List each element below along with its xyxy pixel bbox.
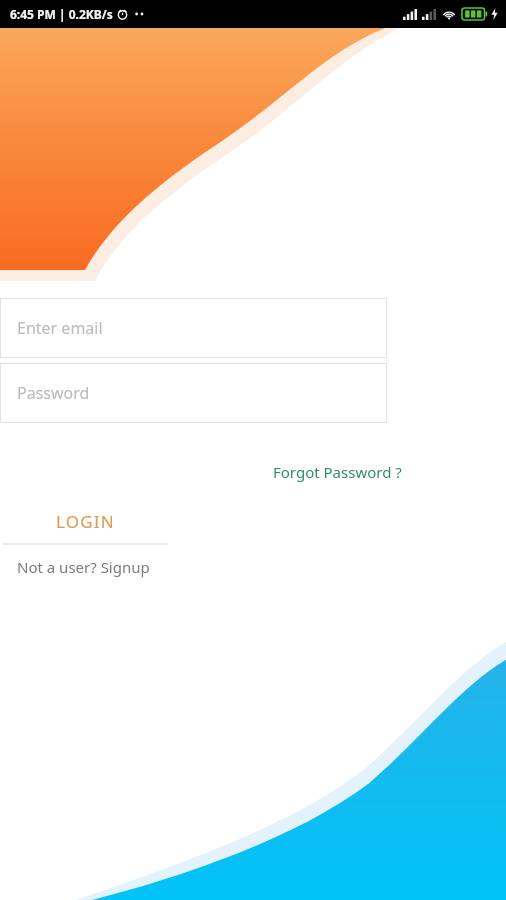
- staticText: Password: [17, 382, 90, 404]
- button[interactable]: Forgot Password ?: [269, 459, 406, 485]
- staticText: LOGIN: [56, 510, 115, 533]
- button[interactable]: Password: [0, 363, 387, 423]
- button[interactable]: Enter email: [0, 298, 387, 358]
- staticText: Not a user? Signup: [17, 557, 150, 577]
- staticText: Forgot Password ?: [273, 462, 402, 482]
- staticText: 6:45 PM | 0.2KB/s: [10, 6, 113, 22]
- button[interactable]: Login: [2, 499, 168, 543]
- staticText: Enter email: [17, 317, 103, 339]
- button[interactable]: Not a user? Signup: [13, 554, 154, 580]
